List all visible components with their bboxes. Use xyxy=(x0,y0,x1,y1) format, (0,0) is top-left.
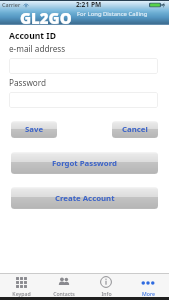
staticText: Save xyxy=(25,124,44,135)
button[interactable]: Info xyxy=(85,274,127,297)
staticText: Cancel xyxy=(122,124,148,135)
staticText: Password xyxy=(9,77,47,88)
staticText: Forgot Password xyxy=(52,158,117,169)
button[interactable] xyxy=(9,58,158,74)
button[interactable]: Create Account xyxy=(11,187,158,209)
button[interactable]: Save xyxy=(11,121,57,138)
button[interactable]: Keypad xyxy=(0,274,43,297)
staticText: Account ID xyxy=(9,30,56,42)
staticText: Create Account xyxy=(55,193,115,204)
staticText: e-mail address xyxy=(9,43,66,54)
button[interactable]: Forgot Password xyxy=(11,152,158,174)
staticText: GL2GO xyxy=(20,8,72,28)
button[interactable]: Contacts xyxy=(43,274,85,297)
staticText: 2:21 PM xyxy=(76,0,102,9)
button[interactable] xyxy=(9,92,158,108)
staticText: Keypad xyxy=(12,290,31,297)
button[interactable]: Cancel xyxy=(112,121,158,138)
staticText: Contacts xyxy=(53,290,75,297)
button[interactable]: More xyxy=(127,274,169,297)
staticText: For Long Distance Calling xyxy=(77,10,148,18)
staticText: More xyxy=(142,290,155,297)
staticText: Carrier xyxy=(2,1,21,8)
staticText: Info xyxy=(101,290,112,297)
